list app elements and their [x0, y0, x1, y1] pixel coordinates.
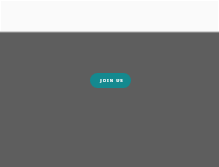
button[interactable]: JOIN US [90, 73, 131, 88]
staticText: JOIN US [100, 78, 124, 84]
